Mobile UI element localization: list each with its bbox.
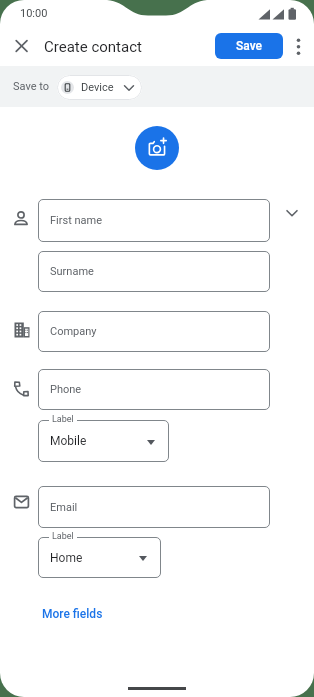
- button[interactable]: Surname: [38, 251, 270, 292]
- staticText: Email: [50, 501, 78, 514]
- staticText: Home: [50, 551, 83, 565]
- staticText: Surname: [50, 265, 94, 278]
- staticText: Save: [236, 39, 262, 53]
- staticText: Create contact: [44, 38, 142, 56]
- button[interactable]: Save: [215, 33, 283, 59]
- staticText: Label: [52, 414, 74, 425]
- staticText: Label: [52, 531, 74, 542]
- staticText: Save to: [13, 80, 50, 93]
- button[interactable]: Device: [57, 75, 142, 100]
- button[interactable]: Company: [38, 311, 270, 352]
- button[interactable]: Email: [38, 486, 270, 528]
- staticText: Company: [50, 325, 97, 338]
- staticText: More fields: [42, 607, 103, 621]
- button[interactable]: [280, 201, 304, 225]
- staticText: Phone: [50, 383, 82, 396]
- button[interactable]: [288, 34, 310, 58]
- button[interactable]: Phone: [38, 369, 270, 410]
- button[interactable]: [135, 126, 179, 170]
- staticText: 10:00: [20, 7, 48, 20]
- button[interactable]: [10, 34, 34, 58]
- staticText: First name: [50, 214, 103, 227]
- button[interactable]: More fields: [42, 605, 122, 623]
- button[interactable]: Home: [38, 537, 161, 578]
- button[interactable]: First name: [38, 199, 270, 242]
- staticText: Device: [81, 81, 114, 94]
- button[interactable]: Mobile: [38, 420, 169, 462]
- staticText: Mobile: [50, 434, 87, 448]
